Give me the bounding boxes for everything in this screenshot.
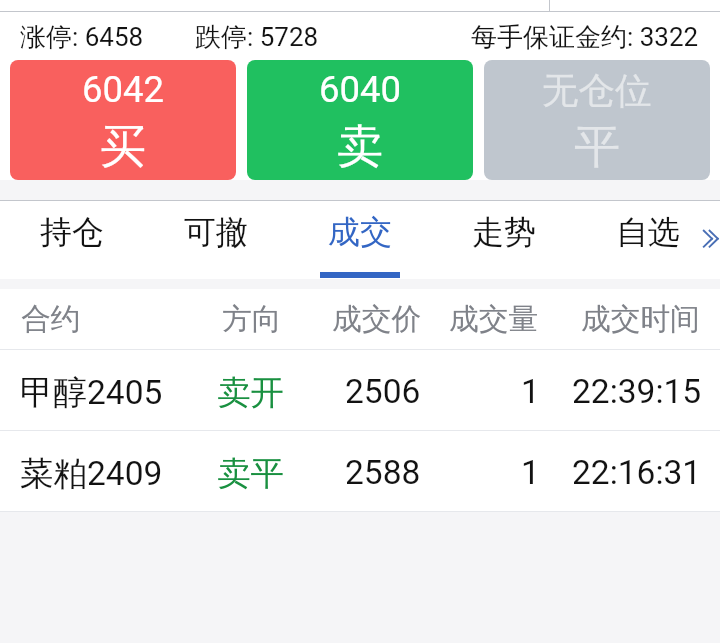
staticText: 6042 xyxy=(82,68,165,111)
staticText: 自选 xyxy=(616,212,680,252)
staticText: 每手保证金约: 3322 xyxy=(471,21,699,54)
staticText: 成交量 xyxy=(449,300,539,337)
button[interactable]: More tabs xyxy=(694,219,720,259)
staticText: 合约 xyxy=(21,300,81,337)
staticText: 卖 xyxy=(337,118,383,176)
staticText: 可撤 xyxy=(184,212,248,252)
staticText: 甲醇2405 xyxy=(20,372,163,414)
staticText: 平 xyxy=(574,118,620,176)
button[interactable]: 自选 xyxy=(576,201,720,279)
staticText: 持仓 xyxy=(40,212,104,252)
staticText: 1 xyxy=(521,372,540,411)
button[interactable]: 菜粕2409 xyxy=(0,453,720,495)
staticText: 卖平 xyxy=(217,453,284,495)
staticText: 走势 xyxy=(472,212,536,252)
staticText: 成交时间 xyxy=(581,300,700,337)
button[interactable]: 合约 xyxy=(0,300,720,337)
staticText: 成交价 xyxy=(332,300,422,337)
button[interactable]: 可撤 xyxy=(144,201,288,279)
button[interactable]: 走势 xyxy=(432,201,576,279)
button[interactable]: 6040 xyxy=(247,60,473,180)
staticText: 2506 xyxy=(345,372,421,411)
staticText: 无仓位 xyxy=(542,68,652,114)
staticText: 方向 xyxy=(222,300,282,337)
staticText: 22:16:31 xyxy=(572,453,702,492)
staticText: 菜粕2409 xyxy=(20,453,163,495)
staticText: 买 xyxy=(100,118,146,176)
staticText: 跌停: 5728 xyxy=(195,21,319,54)
button[interactable]: 甲醇2405 xyxy=(0,372,720,414)
staticText: 6040 xyxy=(319,68,402,111)
button[interactable]: 成交 xyxy=(288,201,432,279)
staticText: 成交 xyxy=(328,212,392,252)
staticText: 22:39:15 xyxy=(572,372,702,411)
button[interactable]: 持仓 xyxy=(0,201,144,279)
staticText: 卖开 xyxy=(217,372,284,414)
staticText: 涨停: 6458 xyxy=(20,21,144,54)
button[interactable]: 无仓位 xyxy=(484,60,710,180)
button[interactable]: 6042 xyxy=(10,60,236,180)
staticText: 2588 xyxy=(345,453,421,492)
staticText: 1 xyxy=(521,453,540,492)
